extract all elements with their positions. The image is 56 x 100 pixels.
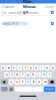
staticText: f (22, 73, 23, 76)
staticText: j (38, 73, 39, 76)
button[interactable]: c (20, 79, 25, 85)
button[interactable]: Add recipient (51, 11, 56, 14)
staticText: n (38, 80, 40, 84)
button[interactable]: d (15, 72, 19, 77)
button[interactable]: a (4, 72, 9, 77)
staticText: w (8, 66, 10, 69)
button[interactable]: return (44, 87, 55, 92)
button[interactable]: m (43, 79, 47, 85)
button[interactable]: Cancel (0, 3, 14, 9)
staticText: g (27, 73, 29, 76)
staticText: h (32, 73, 34, 76)
staticText: e (13, 66, 15, 69)
button[interactable]: z (9, 79, 13, 85)
button[interactable]: t (23, 65, 27, 70)
button[interactable]: l (47, 72, 52, 77)
staticText: New Message (23, 0, 36, 14)
button[interactable]: w (6, 65, 11, 70)
staticText: To: name@example.com (1, 10, 43, 15)
staticText: a (6, 73, 7, 76)
staticText: z (11, 80, 12, 84)
button[interactable] (9, 87, 14, 92)
button[interactable]: q (1, 65, 5, 70)
staticText: m (44, 80, 46, 84)
button[interactable]: n (37, 79, 42, 85)
button[interactable]: s (10, 72, 14, 77)
button[interactable] (1, 79, 8, 85)
staticText: c (22, 80, 23, 84)
staticText: b (33, 80, 35, 84)
button[interactable]: o (45, 65, 50, 70)
button[interactable]: x (14, 79, 19, 85)
staticText: 123 (1, 87, 7, 91)
button[interactable]: h (31, 72, 35, 77)
staticText: y (30, 66, 31, 69)
button[interactable]: k (42, 72, 46, 77)
staticText: Done (45, 4, 54, 9)
button[interactable]: Done (45, 3, 56, 9)
button[interactable]: b (31, 79, 36, 85)
button[interactable]: j (36, 72, 41, 77)
button[interactable]: r (17, 65, 22, 70)
button[interactable]: p (51, 65, 55, 70)
button[interactable]: y (28, 65, 33, 70)
staticText: Cancel (2, 4, 14, 9)
button[interactable]: e (12, 65, 16, 70)
staticText: Suggested (3, 22, 18, 25)
staticText: l (49, 73, 50, 76)
staticText: u (35, 66, 37, 69)
button[interactable]: space (15, 87, 43, 92)
button[interactable]: i (39, 65, 44, 70)
button[interactable]: v (26, 79, 30, 85)
button[interactable]: 123 (1, 87, 8, 92)
staticText: p (52, 66, 54, 69)
staticText: x (16, 80, 17, 84)
button[interactable] (48, 79, 55, 85)
button[interactable]: f (20, 72, 25, 77)
button[interactable]: Add person (51, 22, 56, 25)
button[interactable]: u (34, 65, 39, 70)
staticText: t (25, 66, 26, 69)
staticText: return (45, 87, 54, 91)
staticText: q (2, 66, 4, 69)
staticText: r (19, 66, 20, 69)
staticText: o (46, 66, 48, 69)
staticText: i (41, 66, 42, 69)
button[interactable]: g (26, 72, 30, 77)
staticText: d (16, 73, 18, 76)
button[interactable]: Suggested (1, 21, 28, 26)
